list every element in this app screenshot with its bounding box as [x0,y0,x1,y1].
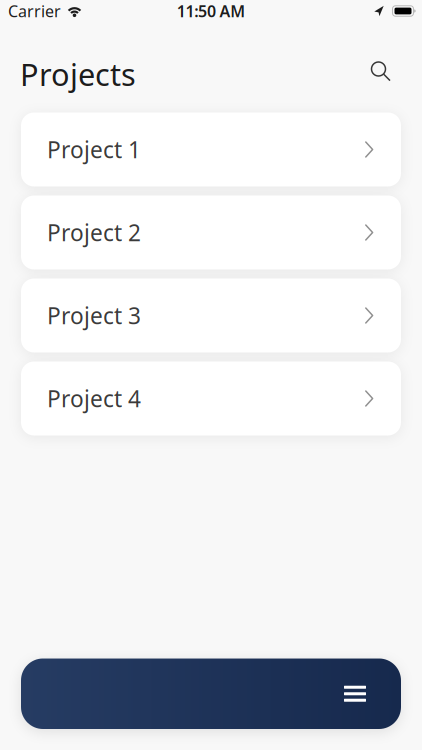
button[interactable]: Project 2 [21,195,401,269]
button[interactable]: Project 4 [21,361,401,435]
staticText: Carrier [8,0,61,22]
staticText: Project 3 [47,300,141,330]
staticText: Project 4 [47,383,141,413]
staticText: Project 1 [47,134,141,164]
staticText: 11:50 AM [177,0,245,22]
staticText: Project 2 [47,217,141,247]
button[interactable]: Project 3 [21,278,401,352]
staticText: Projects [20,54,136,94]
button[interactable]: Project 1 [21,112,401,186]
button[interactable]: Menu [333,672,377,716]
button[interactable]: Search [371,62,391,82]
